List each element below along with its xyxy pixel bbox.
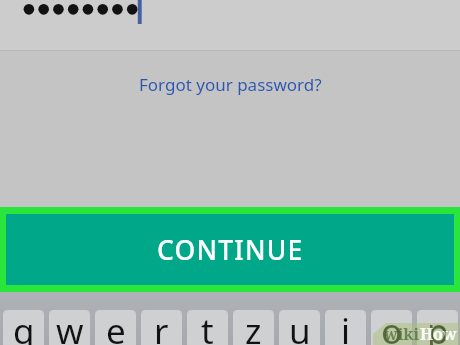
staticText: Forgot your password?	[139, 73, 322, 96]
button[interactable]: w	[49, 310, 90, 345]
staticText: i	[341, 310, 351, 345]
staticText: u	[289, 310, 311, 345]
button[interactable]: t	[187, 310, 228, 345]
staticText: CONTINUE	[157, 232, 304, 268]
button[interactable]: i	[325, 310, 366, 345]
button[interactable]: u	[279, 310, 320, 345]
staticText: r	[154, 310, 169, 345]
button[interactable]: r	[141, 310, 182, 345]
button[interactable]: q	[3, 310, 44, 345]
button[interactable]: CONTINUE	[6, 214, 454, 285]
button[interactable]: Password field	[0, 0, 460, 50]
staticText: w	[56, 310, 84, 345]
staticText: p	[427, 310, 449, 345]
staticText: o	[381, 310, 403, 345]
staticText: z	[245, 310, 262, 345]
staticText: How	[420, 323, 457, 345]
button[interactable]: o	[371, 310, 412, 345]
staticText: wiki	[384, 323, 420, 345]
button[interactable]: e	[95, 310, 136, 345]
button[interactable]: p	[417, 310, 458, 345]
button[interactable]: z	[233, 310, 274, 345]
staticText: t	[201, 310, 214, 345]
staticText: e	[106, 310, 126, 345]
staticText: q	[13, 310, 35, 345]
button[interactable]: Forgot your password?	[129, 68, 332, 101]
